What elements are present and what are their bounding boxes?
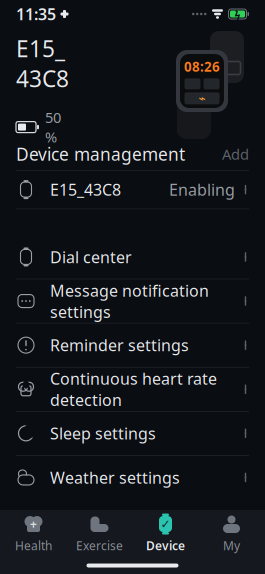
button[interactable]: ✓ [132,510,198,557]
staticText: My [223,537,240,553]
staticText: Add [222,144,249,164]
button[interactable]: Message notification settings [0,279,265,323]
staticText: Sleep settings [50,423,156,444]
staticText: E15_43C8 [50,179,121,200]
button[interactable]: Weather settings [0,456,265,499]
button[interactable]: Sleep settings [0,412,265,455]
staticText: 08:26 [184,58,220,75]
staticText: Continuous heart rate detection [50,368,217,410]
staticText: ⌁ [198,91,205,105]
staticText: Enabling [169,179,235,200]
button[interactable]: Add [212,138,249,170]
staticText: Weather settings [50,467,180,488]
button[interactable]: Dial center [0,235,265,279]
staticText: Dial center [50,246,132,267]
button[interactable]: E15_43C8 [0,171,265,209]
staticText: Health [15,537,52,553]
staticText: + [30,516,37,532]
button[interactable]: Continuous heart rate detection [0,367,265,411]
button[interactable]: Exercise [66,510,132,557]
staticText: E15_43C8 [16,33,69,94]
button[interactable]: My [198,510,264,557]
staticText: ✓ [160,517,170,531]
staticText: 50% [45,108,61,147]
staticText: Exercise [76,537,123,553]
staticText: Reminder settings [50,334,189,356]
staticText: 11:35 [16,3,56,25]
staticText: ϟ [234,7,240,21]
button[interactable]: Reminder settings [0,323,265,367]
staticText: Device [146,537,185,553]
button[interactable]: + [0,510,66,557]
staticText: Message notification settings [50,280,209,322]
staticText: Device management [16,142,185,165]
